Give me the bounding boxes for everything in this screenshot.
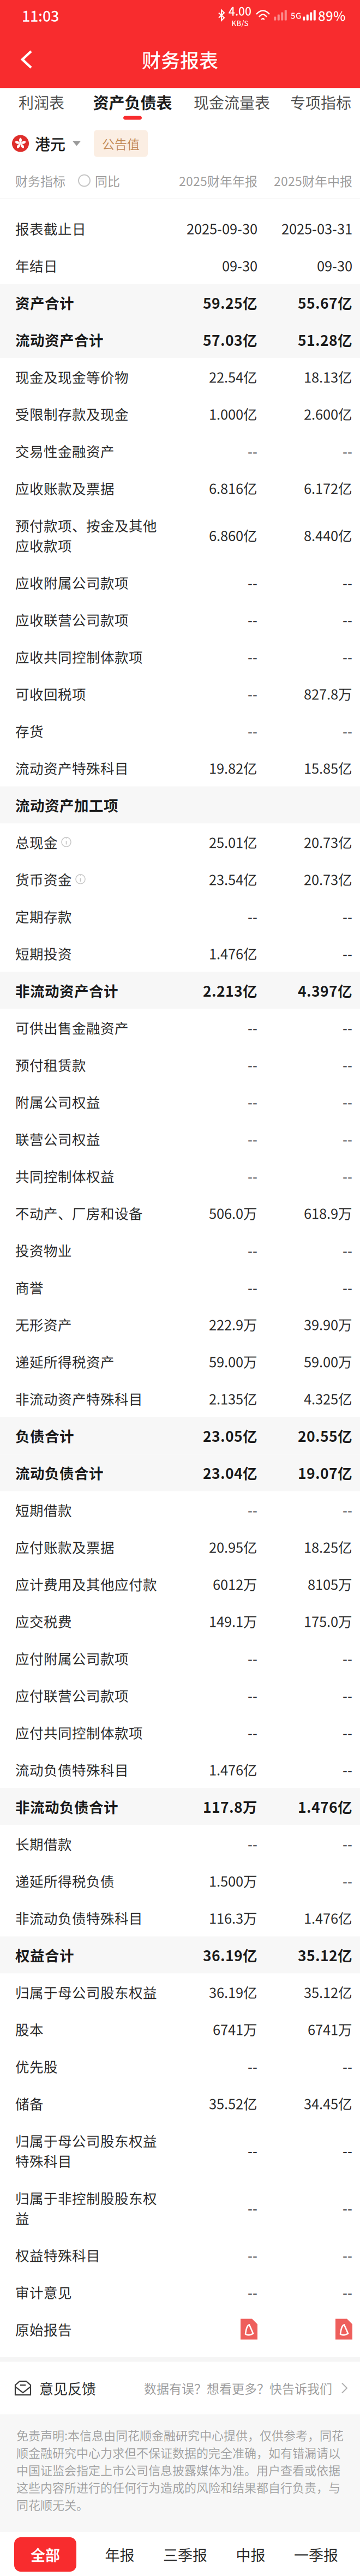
button[interactable]: 利润表 [0,88,83,124]
staticText: 4.00 [229,2,251,19]
button[interactable]: 应收共同控制体款项 [0,638,360,675]
button[interactable]: 非流动负债特殊科目 [0,1899,360,1936]
button[interactable]: 应计费用及其他应付款 [0,1565,360,1602]
button[interactable]: 存货 [0,712,360,749]
button[interactable]: 专项指标 [281,88,360,124]
button[interactable]: 审计意见 [0,2274,360,2311]
staticText: 149.1万 [209,1611,257,1631]
staticText: 归属于非控制股股东权 益 [15,2188,157,2228]
staticText: 可收回税项 [15,684,86,704]
button[interactable]: 权益特殊科目 [0,2236,360,2274]
button[interactable]: 递延所得税负债 [0,1862,360,1899]
button[interactable]: 受限制存款及现金 [0,395,360,432]
staticText: -- [343,2198,352,2218]
button[interactable]: 附属公司权益 [0,1083,360,1120]
staticText: 506.0万 [209,1203,257,1223]
button[interactable]: 非流动资产特殊科目 [0,1380,360,1417]
button[interactable]: 应收联营公司款项 [0,601,360,638]
button[interactable]: 不动产、厂房和设备 [0,1194,360,1232]
staticText: 定期存款 [15,906,72,926]
staticText: -- [343,1240,352,1260]
button[interactable]: 优先股 [0,2048,360,2085]
staticText: -- [248,441,257,461]
button[interactable]: 可收回税项 [0,675,360,712]
button[interactable]: 投资物业 [0,1232,360,1269]
button[interactable]: 公告值 [94,130,148,157]
button[interactable]: 总现金 [0,823,360,861]
button[interactable]: 流动资产加工项 [0,786,360,823]
staticText: 20.55亿 [298,1425,352,1446]
button[interactable]: 返回 [0,31,71,88]
button[interactable]: 年报 [105,2544,134,2565]
staticText: -- [343,1166,352,1186]
button[interactable]: 应付附属公司款项 [0,1640,360,1677]
staticText: -- [343,441,352,461]
button[interactable]: 货币资金 [0,861,360,898]
button[interactable]: 商誉 [0,1269,360,1306]
staticText: 原始报告 [15,2319,72,2339]
button[interactable]: 非流动资产合计 [0,972,360,1009]
staticText: 59.25亿 [203,292,257,313]
button[interactable]: 预付款项、按金及其他 应收款项 [0,507,360,564]
button[interactable]: 归属于母公司股东权益 特殊科目 [0,2122,360,2179]
button[interactable]: 现金流量表 [182,88,281,124]
button[interactable]: 资产合计 [0,284,360,321]
button[interactable]: 流动负债合计 [0,1454,360,1491]
button[interactable]: 意见反馈 [0,2362,360,2414]
staticText: 2.213亿 [203,980,257,1001]
button[interactable]: 中报 [236,2544,265,2565]
button[interactable]: 应付共同控制体款项 [0,1714,360,1751]
button[interactable]: 交易性金融资产 [0,432,360,469]
button[interactable]: 应付联营公司款项 [0,1677,360,1714]
button[interactable]: 无形资产 [0,1306,360,1343]
button[interactable]: 原始报告 [0,2311,360,2348]
button[interactable]: 归属于母公司股东权益 [0,1973,360,2011]
button[interactable]: 预付租赁款 [0,1046,360,1083]
staticText: 一季报 [294,2544,338,2565]
button[interactable]: 定期存款 [0,898,360,935]
staticText: -- [248,2056,257,2076]
staticText: 4.397亿 [298,980,352,1001]
staticText: 负债合计 [15,1425,74,1446]
button[interactable]: 非流动负债合计 [0,1788,360,1825]
button[interactable]: 一季报 [294,2544,338,2565]
staticText: 共同控制体权益 [15,1166,115,1186]
staticText: -- [248,2198,257,2218]
button[interactable]: 应收附属公司款项 [0,564,360,601]
button[interactable]: 流动资产特殊科目 [0,749,360,786]
button[interactable]: 股本 [0,2011,360,2048]
button[interactable]: 三季报 [163,2544,207,2565]
button[interactable]: 港元 [12,132,81,154]
staticText: 归属于母公司股东权益 特殊科目 [15,2130,157,2171]
staticText: 应付账款及票据 [15,1537,115,1557]
staticText: KB/S [232,18,248,28]
staticText: 35.12亿 [298,1944,352,1965]
button[interactable]: 共同控制体权益 [0,1157,360,1194]
button[interactable]: 短期借款 [0,1491,360,1528]
button[interactable]: 全部 [14,2537,76,2572]
button[interactable]: 负债合计 [0,1417,360,1454]
button[interactable]: 权益合计 [0,1936,360,1973]
button[interactable]: 资产负债表 [83,88,182,124]
button[interactable]: 递延所得税资产 [0,1343,360,1380]
staticText: -- [248,2282,257,2302]
button[interactable]: 现金及现金等价物 [0,358,360,395]
button[interactable]: 短期投资 [0,935,360,972]
button[interactable]: 流动负债特殊科目 [0,1751,360,1788]
button[interactable]: 报表截止日 [0,210,360,247]
button[interactable]: 联营公司权益 [0,1120,360,1157]
button[interactable]: 应交税费 [0,1602,360,1640]
button[interactable]: 归属于非控制股股东权 益 [0,2179,360,2236]
button[interactable]: 储备 [0,2085,360,2122]
staticText: -- [248,1129,257,1149]
staticText: 6.860亿 [209,525,257,545]
button[interactable]: 应收账款及票据 [0,469,360,507]
button[interactable]: 长期借款 [0,1825,360,1862]
button[interactable]: 可供出售金融资产 [0,1009,360,1046]
button[interactable]: 流动资产合计 [0,321,360,358]
button[interactable]: 年结日 [0,247,360,284]
staticText: 15.85亿 [304,758,352,778]
button[interactable]: 应付账款及票据 [0,1528,360,1565]
staticText: 权益特殊科目 [15,2245,100,2265]
staticText: 资产负债表 [93,91,172,113]
